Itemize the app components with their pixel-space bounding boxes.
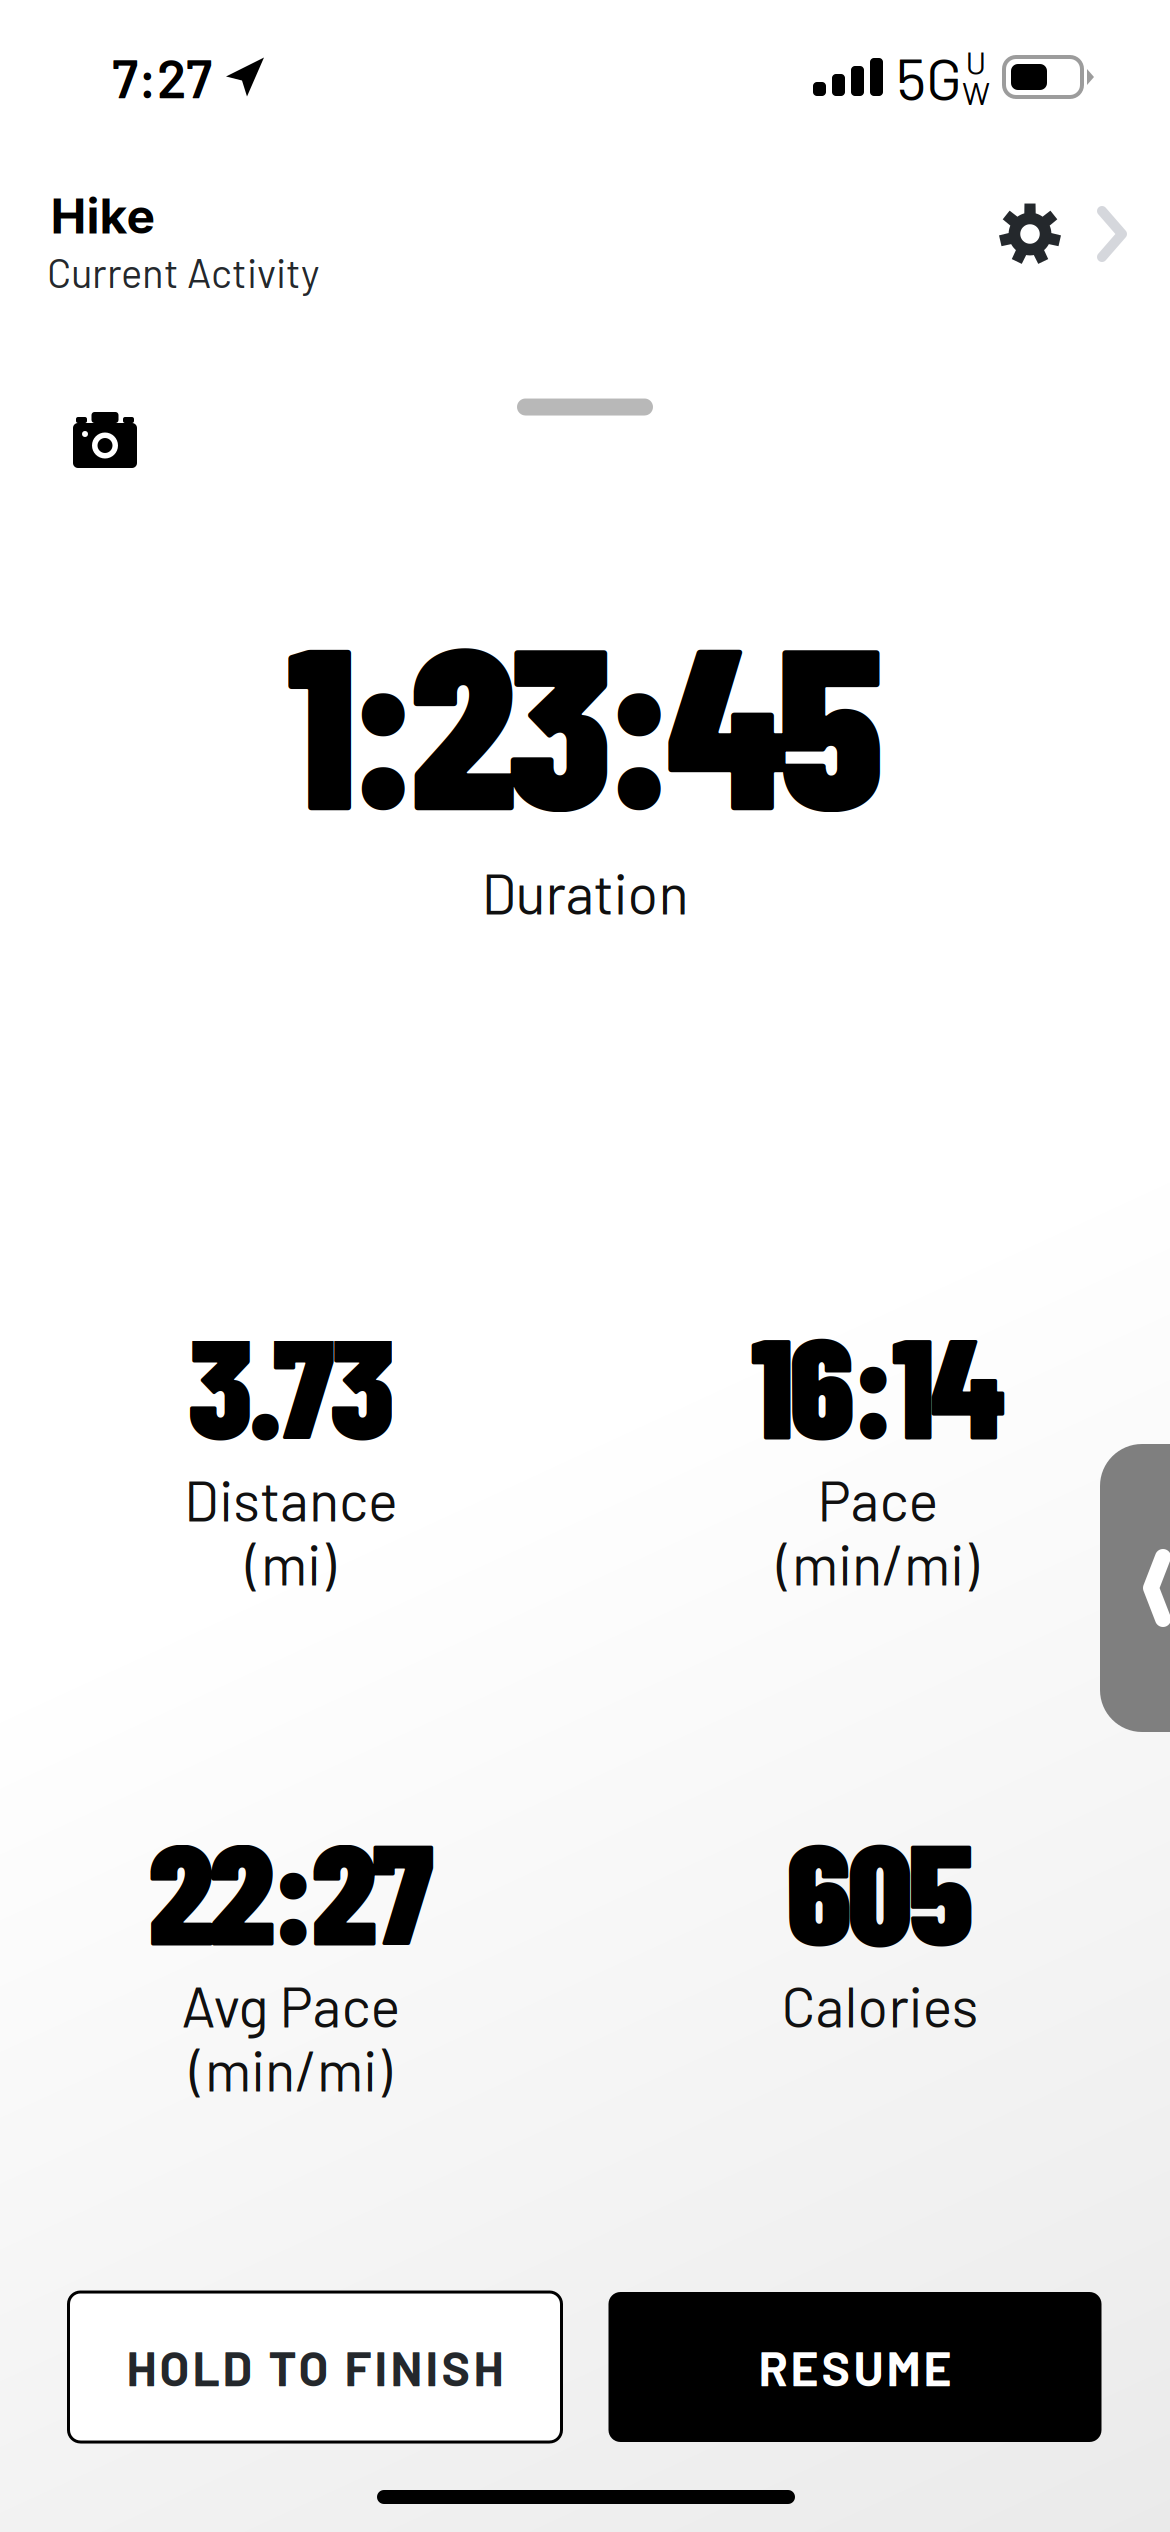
staticText: Current Activity [47, 248, 319, 296]
staticText: Distance [184, 1465, 398, 1533]
staticText: RESUME [758, 2338, 951, 2396]
staticText: 605 [786, 1804, 973, 1974]
staticText: 7:27 [112, 45, 212, 109]
staticText: 5G [896, 42, 962, 112]
staticText: W [962, 73, 990, 111]
staticText: Pace [817, 1465, 938, 1533]
staticText: (min/mi) [777, 1529, 979, 1597]
button[interactable]: RESUME [608, 2292, 1101, 2442]
staticText: 22:27 [148, 1804, 433, 1974]
staticText: Calories [781, 1971, 978, 2039]
staticText: HOLD TO FINISH [126, 2338, 503, 2396]
staticText: Hike [50, 187, 155, 245]
staticText: Duration [481, 858, 688, 926]
staticText: 3.73 [188, 1298, 394, 1468]
staticText: U [965, 43, 986, 81]
staticText: 16:14 [750, 1298, 1005, 1468]
staticText: (mi) [246, 1529, 336, 1597]
staticText: Avg Pace [181, 1971, 400, 2039]
button[interactable]: HOLD TO FINISH [68, 2292, 561, 2442]
button[interactable]: Take photo [57, 396, 153, 484]
button[interactable]: Settings [977, 181, 1149, 287]
button[interactable]: Show map [1100, 1444, 1170, 1732]
staticText: (min/mi) [190, 2035, 392, 2103]
staticText: 1:23:45 [286, 582, 883, 856]
